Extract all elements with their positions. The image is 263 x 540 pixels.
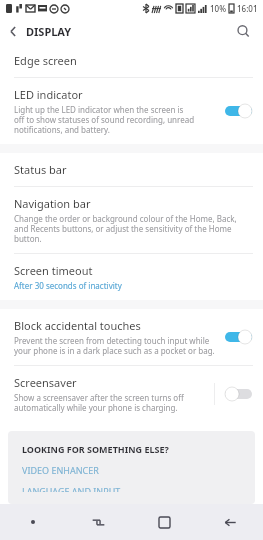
staticText: LOOKING FOR SOMETHING ELSE?	[22, 443, 169, 455]
button[interactable]: Block accidental touches	[223, 324, 253, 350]
staticText: Screensaver	[14, 375, 77, 390]
staticText: DISPLAY	[26, 24, 72, 39]
staticText: Screen timeout	[14, 263, 93, 278]
staticText: LED indicator	[14, 87, 83, 102]
button[interactable]: Edge screen	[0, 44, 263, 77]
staticText: Prevent the screen from detecting touch …	[14, 335, 215, 356]
button[interactable]: Navigation bar	[0, 187, 263, 253]
staticText: 16:01	[237, 3, 258, 14]
staticText: VIDEO ENHANCER	[22, 464, 99, 476]
staticText: Show a screensaver after the screen turn…	[14, 392, 184, 413]
staticText: Change the order or background colour of…	[14, 213, 237, 244]
button[interactable]: LED indicator	[0, 78, 263, 144]
staticText: After 30 seconds of inactivity	[14, 280, 122, 291]
staticText: Edge screen	[14, 53, 77, 68]
button[interactable]: Status bar	[0, 153, 263, 186]
staticText: 10%	[210, 3, 226, 14]
button[interactable]: Screen timeout	[0, 254, 263, 300]
button[interactable]: LED indicator	[223, 98, 253, 124]
staticText: Navigation bar	[14, 196, 91, 211]
button[interactable]: Recents	[65, 504, 131, 540]
button[interactable]: LANGUAGE AND INPUT	[22, 485, 245, 492]
button[interactable]: Back	[0, 18, 26, 44]
button[interactable]: Home	[131, 504, 197, 540]
button[interactable]: Screensaver	[0, 366, 263, 422]
staticText: Light up the LED indicator when the scre…	[14, 104, 195, 135]
other: Indicator	[0, 504, 65, 540]
button[interactable]: Block accidental touches	[0, 309, 263, 365]
button[interactable]: Screensaver	[223, 381, 253, 407]
button[interactable]: Back	[197, 504, 263, 540]
staticText: Status bar	[14, 162, 67, 177]
staticText: LANGUAGE AND INPUT	[22, 485, 121, 492]
button[interactable]: Search	[231, 19, 255, 43]
staticText: Block accidental touches	[14, 318, 141, 333]
button[interactable]: VIDEO ENHANCER	[22, 464, 245, 476]
